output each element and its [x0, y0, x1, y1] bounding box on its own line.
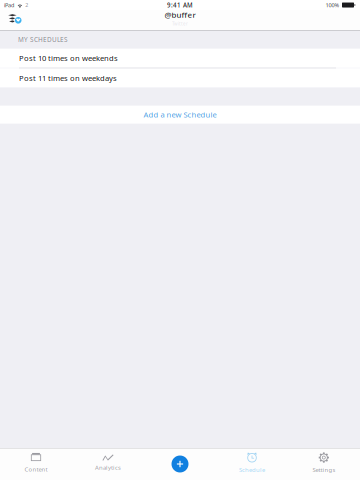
staticText: Add a new Schedule — [143, 109, 216, 120]
button[interactable]: Settings — [288, 448, 360, 480]
staticText: MY SCHEDULES — [18, 35, 68, 44]
button[interactable]: Content — [0, 448, 72, 480]
staticText: Settings — [312, 466, 335, 474]
button[interactable]: Post 11 times on weekdays — [0, 69, 360, 88]
staticText: 100% — [325, 1, 339, 9]
staticText: Twitter — [172, 21, 188, 27]
button[interactable]: Add a new Schedule — [0, 106, 360, 124]
staticText: 2 — [25, 1, 28, 9]
staticText: @buffer — [164, 9, 195, 20]
staticText: Content — [24, 465, 47, 473]
staticText: Post 10 times on weekends — [19, 53, 118, 63]
staticText: Analytics — [95, 463, 121, 471]
button[interactable]: Schedule — [216, 448, 288, 480]
button[interactable]: New post — [144, 448, 216, 480]
staticText: Schedule — [239, 466, 265, 474]
staticText: Post 11 times on weekdays — [19, 73, 117, 83]
button[interactable]: Post 10 times on weekends — [0, 49, 360, 68]
button[interactable]: Switch profile — [6, 11, 24, 25]
button[interactable]: Analytics — [72, 448, 144, 480]
staticText: 9:41 AM — [167, 1, 193, 9]
staticText: iPad — [4, 1, 14, 9]
